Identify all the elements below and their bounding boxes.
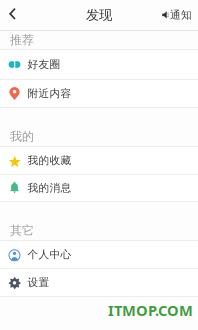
staticText: 推荐 [10, 33, 34, 47]
staticText: 好友圈 [27, 58, 60, 71]
staticText: 我的 [10, 129, 34, 144]
staticText: 附近内容 [27, 87, 71, 100]
button[interactable]: 个人中心 [0, 241, 198, 269]
button[interactable]: Back [0, 0, 24, 30]
button[interactable]: 我的收藏 [0, 147, 198, 175]
button[interactable]: 通知 [162, 0, 198, 30]
staticText: 设置 [27, 276, 49, 289]
staticText: 我的消息 [27, 181, 71, 194]
staticText: 个人中心 [27, 248, 71, 261]
staticText: 发现 [86, 7, 112, 23]
staticText: 其它 [10, 223, 34, 238]
button[interactable]: 好友圈 [0, 50, 198, 80]
button[interactable]: 附近内容 [0, 80, 198, 108]
button[interactable]: 设置 [0, 269, 198, 297]
staticText: 我的收藏 [27, 154, 71, 167]
staticText: ITMOP.COM [108, 300, 193, 320]
button[interactable]: 我的消息 [0, 175, 198, 202]
staticText: 通知 [170, 8, 192, 21]
